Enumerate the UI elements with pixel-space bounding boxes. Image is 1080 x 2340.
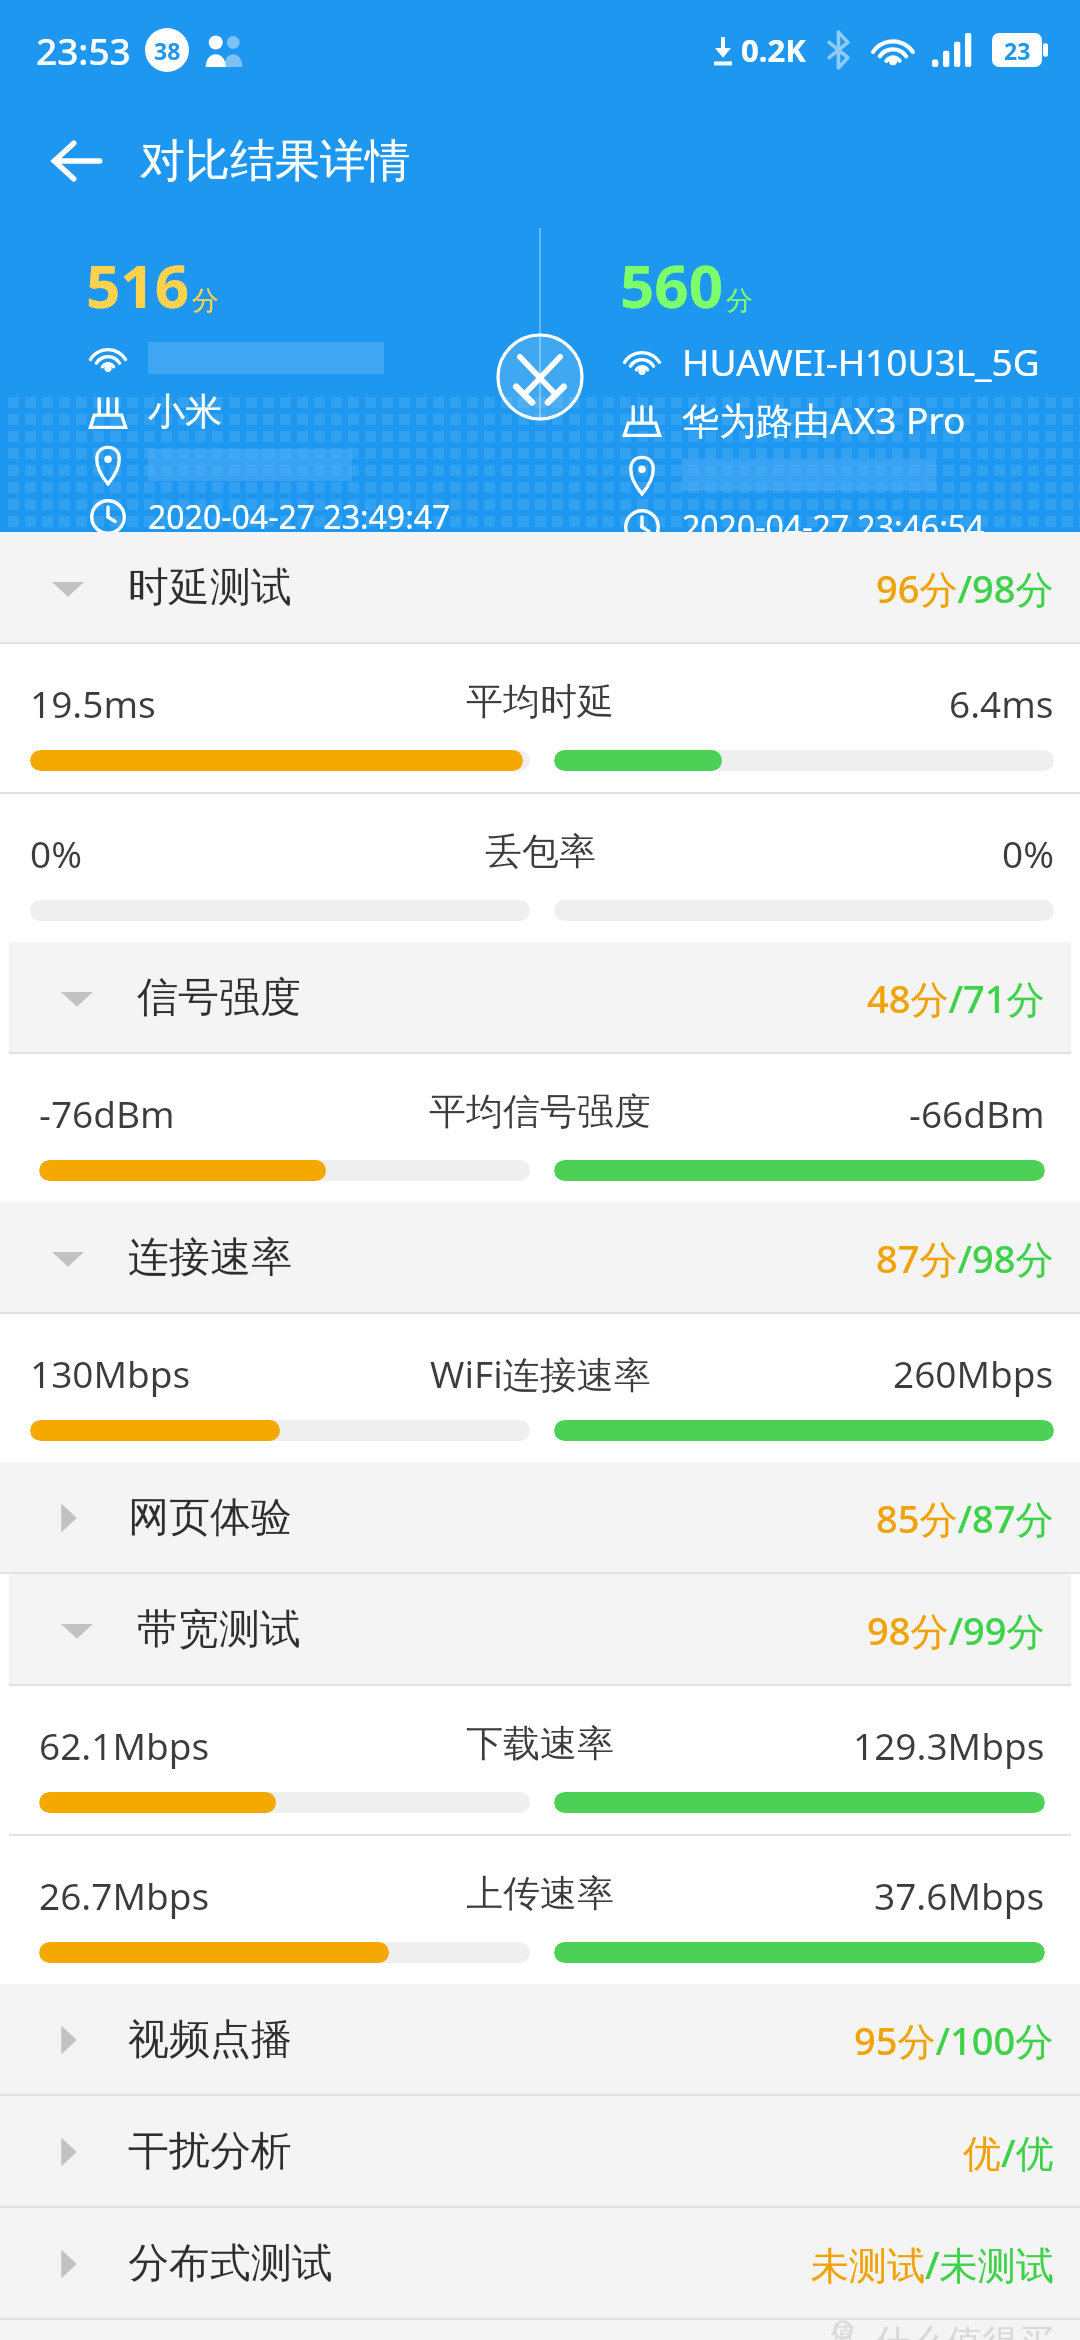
staticText: 连接速率 [128,1232,292,1284]
staticText: 0.2K [741,29,806,71]
staticText: -66dBm [909,1088,1045,1138]
staticText: 129.3Mbps [853,1720,1045,1770]
staticText: 平均时延 [466,678,614,725]
staticText: 6.4ms [949,678,1054,728]
button[interactable]: 26.7Mbps [9,1836,1071,1984]
staticText: 视频点播 [128,2014,292,2066]
staticText: 37.6Mbps [874,1870,1045,1920]
staticText: 分 [192,284,219,318]
staticText: 85分/87分 [876,1492,1054,1544]
staticText: 下载速率 [466,1720,614,1767]
staticText: 干扰分析 [128,2126,292,2178]
staticText: 87分/98分 [876,1232,1054,1284]
staticText: 19.5ms [30,678,156,728]
staticText: 260Mbps [893,1348,1054,1398]
button[interactable]: 网页体验 [0,1462,1080,1574]
button[interactable]: 0% [0,794,1080,942]
staticText: 小米 [148,388,222,435]
staticText: HUAWEI-H10U3L_5G [682,336,1040,386]
staticText: 什么值得买 [874,2320,1054,2340]
button[interactable]: 带宽测试 [9,1574,1071,1686]
button[interactable]: 时延测试 [0,532,1080,644]
button[interactable]: 视频点播 [0,1984,1080,2096]
staticText: 95分/100分 [854,2014,1054,2066]
button[interactable]: Back [34,118,120,204]
staticText: 带宽测试 [137,1604,301,1656]
button[interactable]: 62.1Mbps [9,1686,1071,1834]
staticText: 38 [154,35,181,66]
staticText: 未测试/未测试 [811,2238,1054,2290]
staticText: 62.1Mbps [39,1720,210,1770]
staticText: 23:53 [36,25,131,75]
staticText: 上传速率 [466,1870,614,1917]
staticText: -76dBm [39,1088,175,1138]
staticText: 分 [726,284,753,318]
staticText: 98分/99分 [867,1604,1045,1656]
staticText: 对比结果详情 [140,133,410,190]
staticText: 0% [30,828,82,878]
staticText: WiFi连接速率 [430,1348,651,1399]
button[interactable]: 130Mbps [0,1314,1080,1462]
staticText: 26.7Mbps [39,1870,210,1920]
button[interactable]: 干扰分析 [0,2096,1080,2208]
staticText: 优/优 [963,2126,1054,2178]
staticText: 2020-04-27 23:49:47 [148,495,451,539]
button[interactable]: 分布式测试 [0,2208,1080,2320]
staticText: 值 [831,2320,855,2340]
staticText: 丢包率 [485,828,596,875]
staticText: 48分/71分 [867,972,1045,1024]
staticText: 网页体验 [128,1492,292,1544]
staticText: 0% [1002,828,1054,878]
staticText: 96分/98分 [876,562,1054,614]
staticText: 华为路由AX3 Pro [682,394,966,445]
staticText: 560 [620,244,723,326]
staticText: 130Mbps [30,1348,191,1398]
button[interactable]: -76dBm [9,1054,1071,1202]
staticText: 时延测试 [128,562,292,614]
button[interactable]: 信号强度 [9,942,1071,1054]
button[interactable]: 连接速率 [0,1202,1080,1314]
staticText: 平均信号强度 [429,1088,651,1135]
button[interactable]: 19.5ms [0,644,1080,792]
staticText: 516 [86,244,189,326]
staticText: 2020-04-27 23:46:54 [682,505,985,549]
staticText: 信号强度 [137,972,301,1024]
staticText: 分布式测试 [128,2238,333,2290]
staticText: 23 [1004,35,1031,66]
